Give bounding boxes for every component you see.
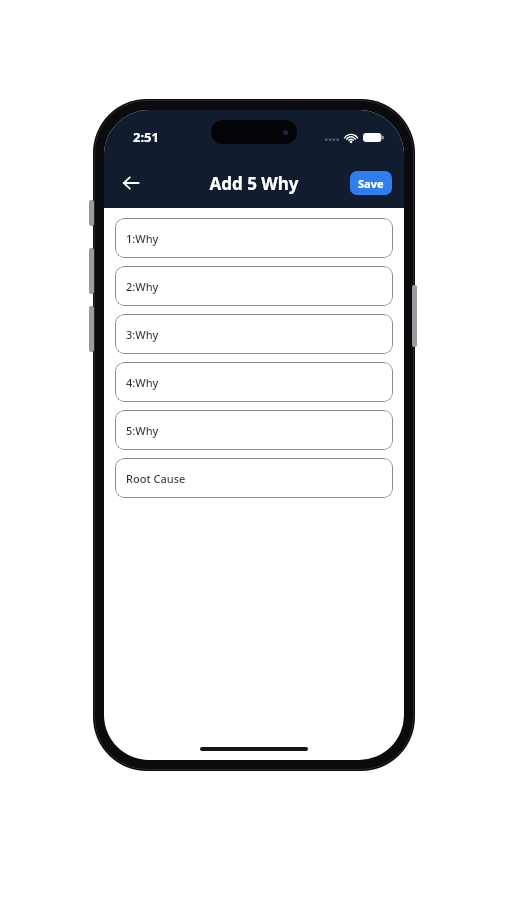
button[interactable]: Save bbox=[350, 171, 392, 195]
button[interactable]: Back bbox=[112, 164, 150, 202]
button[interactable]: 3:Why bbox=[115, 314, 393, 354]
staticText: 5:Why bbox=[126, 423, 159, 438]
button[interactable]: 2:Why bbox=[115, 266, 393, 306]
staticText: 4:Why bbox=[126, 375, 159, 390]
staticText: 2:Why bbox=[126, 279, 159, 294]
button[interactable]: Root Cause bbox=[115, 458, 393, 498]
button[interactable]: 1:Why bbox=[115, 218, 393, 258]
button[interactable]: 4:Why bbox=[115, 362, 393, 402]
staticText: 3:Why bbox=[126, 327, 159, 342]
staticText: Add 5 Why bbox=[209, 172, 299, 195]
button[interactable]: 5:Why bbox=[115, 410, 393, 450]
staticText: 1:Why bbox=[126, 231, 159, 246]
staticText: Root Cause bbox=[126, 471, 186, 486]
staticText: Save bbox=[358, 176, 384, 191]
staticText: 2:51 bbox=[133, 128, 159, 146]
